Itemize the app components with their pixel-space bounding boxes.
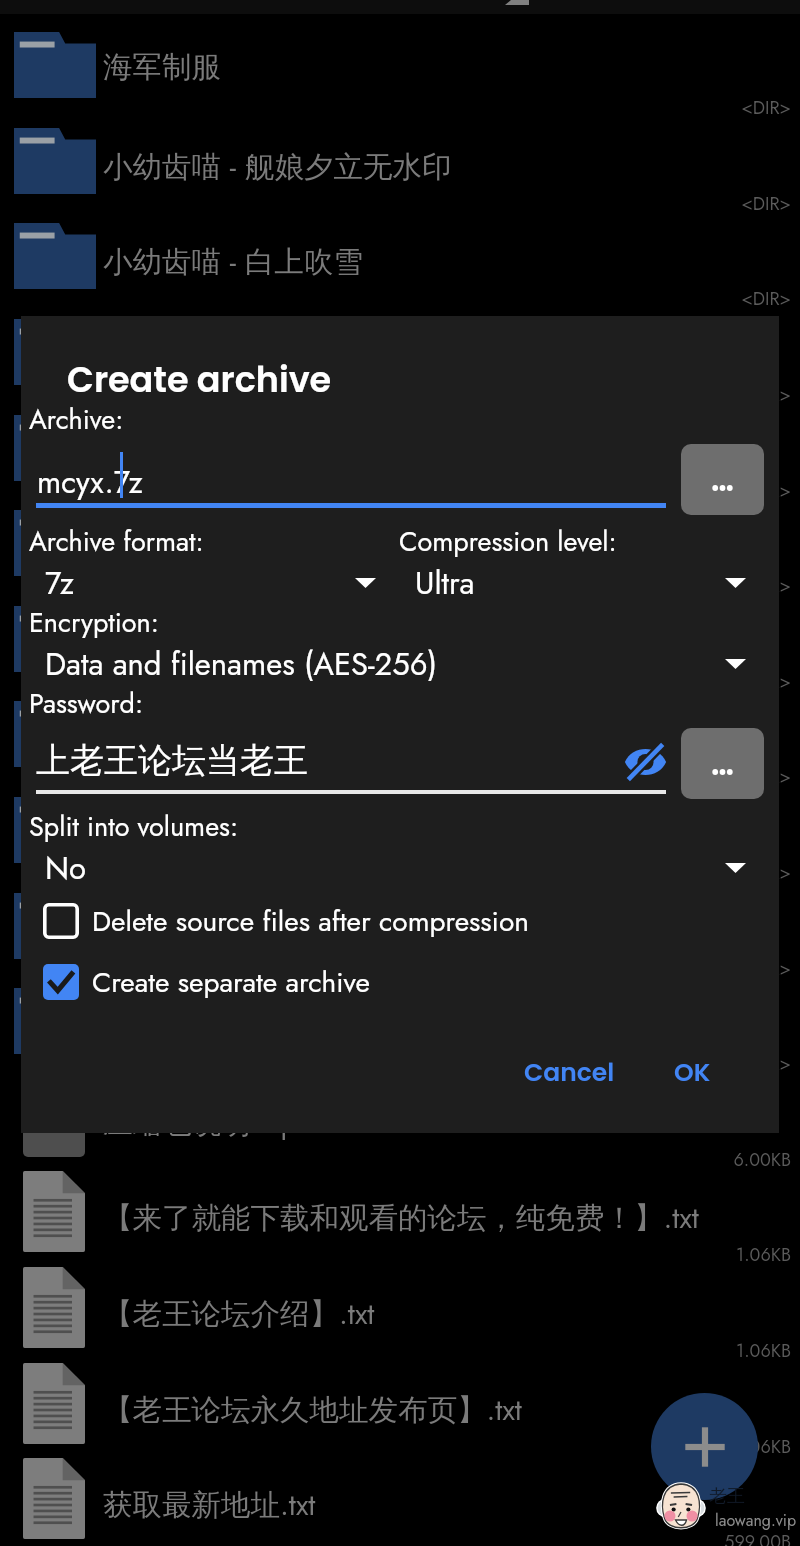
staticText: laowang.vip [715,1509,797,1532]
button[interactable]: 小幼齿喵 - 兔女郎 [0,878,800,974]
button[interactable]: 小幼齿喵 - 女仆装扮 [0,686,800,782]
staticText: <DIR> [0,95,791,121]
staticText: 1.06KB [0,1242,791,1268]
staticText: Delete source files after compression [92,901,529,941]
button[interactable]: Delete source files after compression [35,901,773,941]
button[interactable]: 小幼齿喵 - 白上吹雪 [0,208,800,304]
staticText: 小幼齿喵 - 学生制服 [103,814,363,857]
button[interactable]: 【来了就能下载和观看的论坛，纯免费！】.txt [0,1164,800,1260]
staticText: 压缩包说明.zip [103,1101,298,1144]
staticText: <DIR> [0,382,791,408]
button[interactable]: 获取最新地址.txt [0,1451,800,1546]
staticText: No [45,846,86,891]
button[interactable]: Expand [713,647,757,681]
staticText: <DIR> [0,860,791,886]
staticText: 海军制服 [103,49,221,86]
button[interactable]: 小幼齿喵 - 学生制服 [0,782,800,878]
staticText: OK [674,1055,711,1090]
staticText: Archive format: [29,522,204,561]
staticText: Ultra [415,561,475,606]
staticText: Archive: [29,400,124,439]
staticText: Cancel [524,1055,615,1090]
staticText: 1.06KB [0,1338,791,1364]
staticText: Create separate archive [92,962,370,1002]
button[interactable]: Show password [618,740,672,784]
staticText: <DIR> [0,191,791,217]
staticText: Data and filenames (AES-256) [45,642,438,687]
staticText: 1.06KB [0,1434,791,1460]
button[interactable]: 【老王论坛介绍】.txt [0,1260,800,1356]
staticText: 获取最新地址.txt [103,1483,316,1526]
button[interactable]: 【老王论坛永久地址发布页】.txt [0,1356,800,1452]
staticText: Encryption: [29,603,159,642]
staticText: 小幼齿喵 - 猫耳少女 [103,623,363,666]
button[interactable]: OK [674,1055,711,1090]
staticText: 【来了就能下载和观看的论坛，纯免费！】.txt [103,1196,699,1239]
staticText: <DIR> [0,956,791,982]
button[interactable]: 小幼齿喵 - 赤城秘密 [0,304,800,400]
staticText: 599.00B [0,1529,791,1546]
staticText: <DIR> [0,669,791,695]
staticText: 6.00KB [0,1147,791,1173]
staticText: 小幼齿喵 - 舰娘夕立无水印 [103,145,452,188]
button[interactable]: 海军制服 [0,17,800,113]
button[interactable]: 小幼齿喵 - 泳装限定 [0,495,800,591]
button[interactable]: Generate password [681,728,764,799]
staticText: Compression level: [399,522,617,561]
button[interactable]: 小幼齿喵 - 旗袍写真 [0,973,800,1069]
staticText: Create archive [67,355,332,404]
staticText: 小幼齿喵 - 赤城秘密 [103,336,363,379]
staticText: 上老王论坛当老王 [36,739,308,782]
button[interactable]: New [651,1393,758,1500]
staticText: 7z [45,561,74,606]
staticText: 小幼齿喵 - 泳装限定 [103,527,363,570]
staticText: 小幼齿喵 - 夜战特辑 [103,432,363,475]
button[interactable]: 小幼齿喵 - 舰娘夕立无水印 [0,113,800,209]
staticText: Password: [29,684,144,723]
staticText: 【老王论坛介绍】.txt [103,1292,375,1335]
button[interactable]: 小幼齿喵 - 猫耳少女 [0,591,800,687]
button[interactable]: Create separate archive [35,962,773,1002]
staticText: <DIR> [0,1051,791,1077]
staticText: 小幼齿喵 - 白上吹雪 [103,240,363,283]
button[interactable]: Expand [713,851,757,885]
button[interactable]: Expand [343,566,387,600]
button[interactable]: 压缩包说明.zip [0,1069,800,1165]
staticText: 小幼齿喵 - 女仆装扮 [103,718,363,761]
staticText: <DIR> [0,573,791,599]
staticText: <DIR> [0,286,791,312]
staticText: <DIR> [0,764,791,790]
staticText: 老王 [709,1485,745,1508]
button[interactable]: Cancel [524,1055,615,1090]
button[interactable]: Expand [713,566,757,600]
staticText: <DIR> [0,478,791,504]
staticText: 【老王论坛永久地址发布页】.txt [103,1388,522,1431]
staticText: mcyx.7z [37,460,143,505]
button[interactable]: Browse for archive path [681,444,764,515]
staticText: Split into volumes: [29,807,239,846]
staticText: 小幼齿喵 - 兔女郎 [103,910,334,953]
button[interactable]: 小幼齿喵 - 夜战特辑 [0,400,800,496]
